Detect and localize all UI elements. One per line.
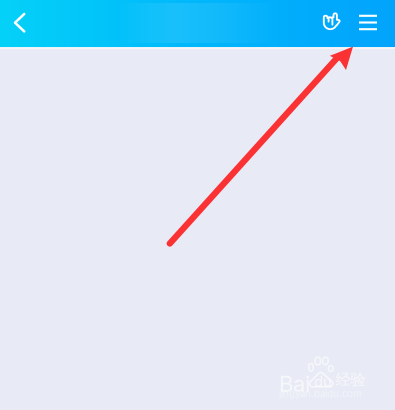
staticText: 经验 [335,370,365,389]
button[interactable]: Back [0,0,44,47]
staticText: Bai [279,370,310,397]
button[interactable]: Gestures [311,0,353,47]
staticText: jingyan.baidu.com [279,388,361,400]
button[interactable]: Menu [347,0,389,47]
staticText: du [314,373,332,390]
